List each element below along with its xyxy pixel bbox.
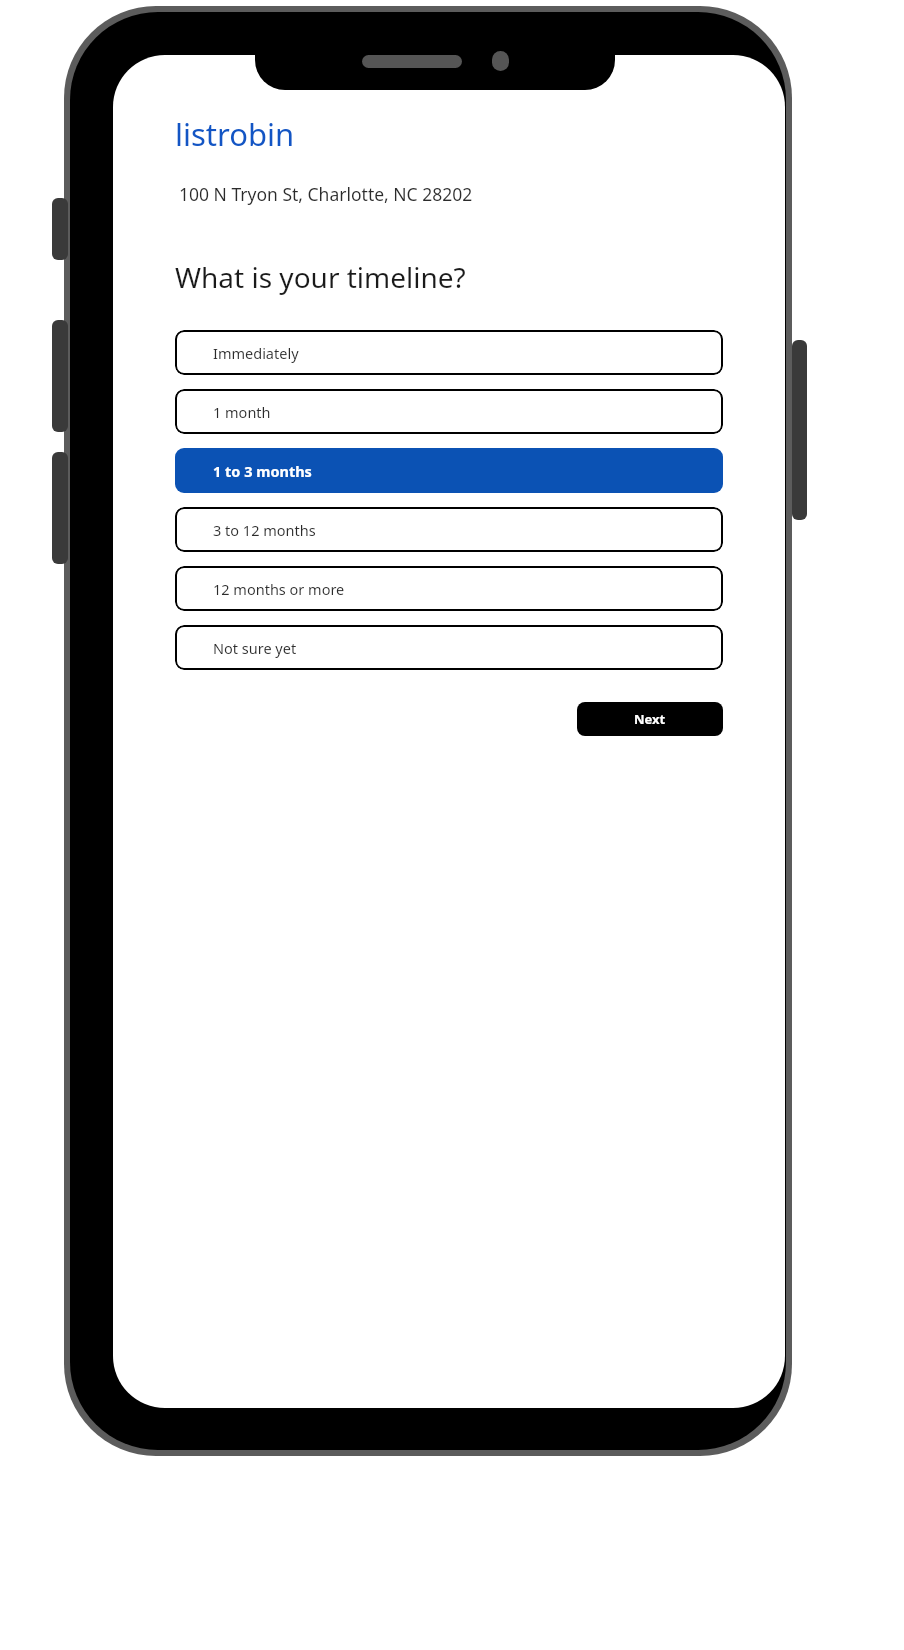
staticText: What is your timeline? (175, 258, 466, 296)
other: Volume up (52, 320, 68, 432)
staticText: 1 to 3 months (213, 461, 312, 481)
other: Silent switch (52, 198, 68, 260)
button[interactable]: 1 to 3 months (175, 448, 723, 493)
button[interactable]: 1 month (175, 389, 723, 434)
button[interactable]: Next (577, 702, 723, 736)
other: Volume down (52, 452, 68, 564)
button[interactable]: Immediately (175, 330, 723, 375)
button[interactable]: 12 months or more (175, 566, 723, 611)
staticText: 3 to 12 months (213, 520, 316, 540)
staticText: 100 N Tryon St, Charlotte, NC 28202 (179, 182, 473, 206)
button[interactable]: 3 to 12 months (175, 507, 723, 552)
staticText: Immediately (213, 343, 299, 363)
staticText: Not sure yet (213, 638, 297, 658)
other: Power (792, 340, 807, 520)
staticText: listrobin (175, 113, 295, 155)
staticText: 12 months or more (213, 579, 345, 599)
staticText: 1 month (213, 402, 271, 422)
button[interactable]: Not sure yet (175, 625, 723, 670)
staticText: Next (634, 710, 666, 728)
